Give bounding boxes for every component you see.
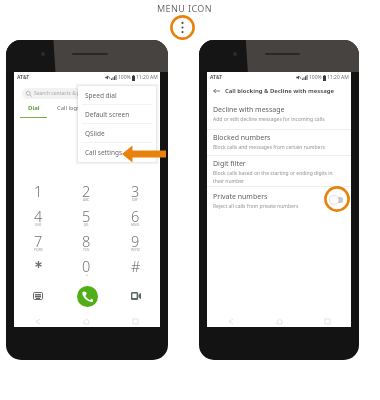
button[interactable]: Decline with message — [207, 102, 351, 130]
button[interactable]: Dial — [16, 104, 51, 120]
button[interactable]: Call logs — [51, 104, 86, 120]
staticText: Blocked numbers — [213, 133, 271, 143]
staticText: AT&T — [17, 74, 30, 81]
button[interactable]: Favorites — [121, 104, 156, 120]
staticText: Favorites — [126, 104, 151, 112]
button[interactable]: 2 — [62, 180, 111, 205]
button[interactable]: Blocked numbers — [207, 130, 351, 156]
staticText: Dial — [28, 104, 40, 112]
button[interactable]: Home — [62, 315, 111, 327]
staticText: 0 — [82, 256, 91, 276]
button[interactable]: 3 — [111, 180, 160, 205]
button[interactable]: Recents — [111, 315, 160, 327]
staticText: QSlide — [85, 129, 105, 138]
button[interactable]: 8 — [62, 230, 111, 255]
button[interactable]: Private numbers switch — [324, 186, 350, 212]
staticText: 4 — [34, 206, 43, 226]
staticText: Block calls and messages from certain nu… — [213, 144, 325, 151]
staticText: 11:20 AM — [327, 74, 349, 81]
button[interactable]: Menu icon — [170, 15, 195, 40]
staticText: JKL — [84, 222, 89, 227]
staticText: MENU ICON — [157, 2, 212, 14]
button[interactable]: Recents — [303, 315, 351, 327]
staticText: PQRS — [34, 247, 43, 252]
staticText: Search contacts & places — [34, 90, 92, 97]
staticText: Call blocking & Decline with message — [225, 87, 334, 95]
button[interactable]: 0 — [62, 255, 111, 280]
staticText: Digit filter — [213, 159, 246, 169]
staticText: Default screen — [85, 110, 130, 119]
button[interactable]: Speed dial — [78, 86, 156, 105]
staticText: GHI — [35, 222, 42, 227]
button[interactable]: 1 — [14, 180, 62, 205]
staticText: Block calls based on the starting or end… — [213, 170, 345, 185]
staticText: ABC — [83, 197, 90, 202]
button[interactable]: 9 — [111, 230, 160, 255]
button[interactable]: 6 — [111, 205, 160, 230]
button[interactable]: Back — [207, 84, 351, 97]
staticText: Call logs — [57, 104, 80, 112]
staticText: # — [131, 256, 141, 276]
button[interactable]: Contacts — [86, 104, 121, 120]
button[interactable]: Default screen — [78, 105, 156, 124]
staticText: 100% — [118, 74, 131, 81]
button[interactable]: Call settings — [78, 143, 156, 162]
staticText: Speed dial — [85, 91, 117, 100]
staticText: MNO — [131, 222, 140, 227]
button[interactable]: Search contacts & places — [22, 88, 152, 99]
staticText: Add or edit decline messages for incomin… — [213, 116, 325, 123]
button[interactable]: # — [111, 255, 160, 280]
staticText: Private numbers — [213, 192, 268, 202]
staticText: 3 — [131, 181, 140, 201]
staticText: Decline with message — [213, 105, 285, 115]
staticText: 1 — [34, 181, 43, 201]
button[interactable]: Private numbers — [207, 187, 351, 214]
staticText: 5 — [82, 206, 91, 226]
staticText: Reject all calls from private numbers — [213, 203, 299, 210]
staticText: 8 — [82, 231, 91, 251]
button[interactable]: Video call — [111, 280, 160, 312]
button[interactable]: Digit filter — [207, 156, 351, 187]
staticText: WXYZ — [131, 247, 140, 252]
button[interactable]: 5 — [62, 205, 111, 230]
staticText: 2 — [82, 181, 91, 201]
staticText: AT&T — [210, 74, 223, 81]
button[interactable]: QSlide — [78, 124, 156, 143]
button[interactable]: Home — [255, 315, 303, 327]
button[interactable]: Keypad — [14, 280, 62, 312]
staticText: TUV — [83, 247, 90, 252]
staticText: 100% — [309, 74, 322, 81]
staticText: Call settings — [85, 148, 123, 157]
staticText: + — [86, 272, 88, 277]
button[interactable]: 4 — [14, 205, 62, 230]
button[interactable]: 7 — [14, 230, 62, 255]
staticText: 7 — [34, 231, 43, 251]
staticText: 11:20 AM — [136, 74, 158, 81]
staticText: 6 — [131, 206, 140, 226]
staticText: 9 — [131, 231, 140, 251]
other: Back — [213, 87, 220, 94]
button[interactable]: Call — [62, 280, 111, 312]
staticText: Contacts — [92, 104, 116, 112]
staticText: DEF — [132, 197, 139, 202]
button[interactable] — [14, 255, 62, 280]
